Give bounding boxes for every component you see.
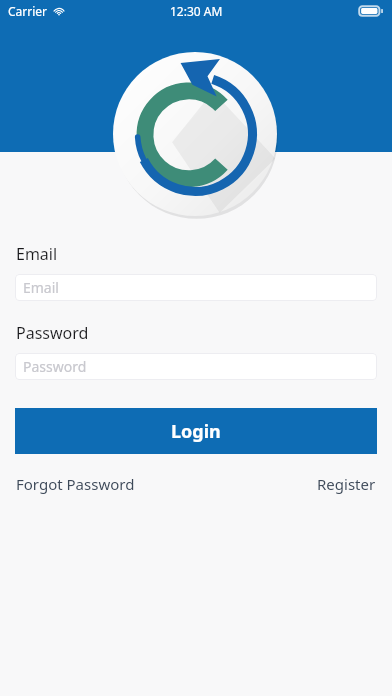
staticText: Email: [16, 243, 58, 265]
staticText: 12:30 AM: [170, 3, 223, 19]
button[interactable]: Register: [317, 474, 376, 494]
button[interactable]: Email: [15, 274, 377, 301]
staticText: Email: [23, 278, 59, 297]
staticText: Password: [16, 322, 89, 344]
staticText: Password: [23, 357, 87, 376]
staticText: Register: [317, 474, 376, 494]
staticText: Forgot Password: [16, 474, 135, 494]
button[interactable]: Forgot Password: [16, 474, 135, 494]
button[interactable]: Password: [15, 353, 377, 380]
staticText: Login: [171, 419, 221, 444]
button[interactable]: Login: [15, 408, 377, 454]
staticText: Carrier: [8, 3, 48, 19]
